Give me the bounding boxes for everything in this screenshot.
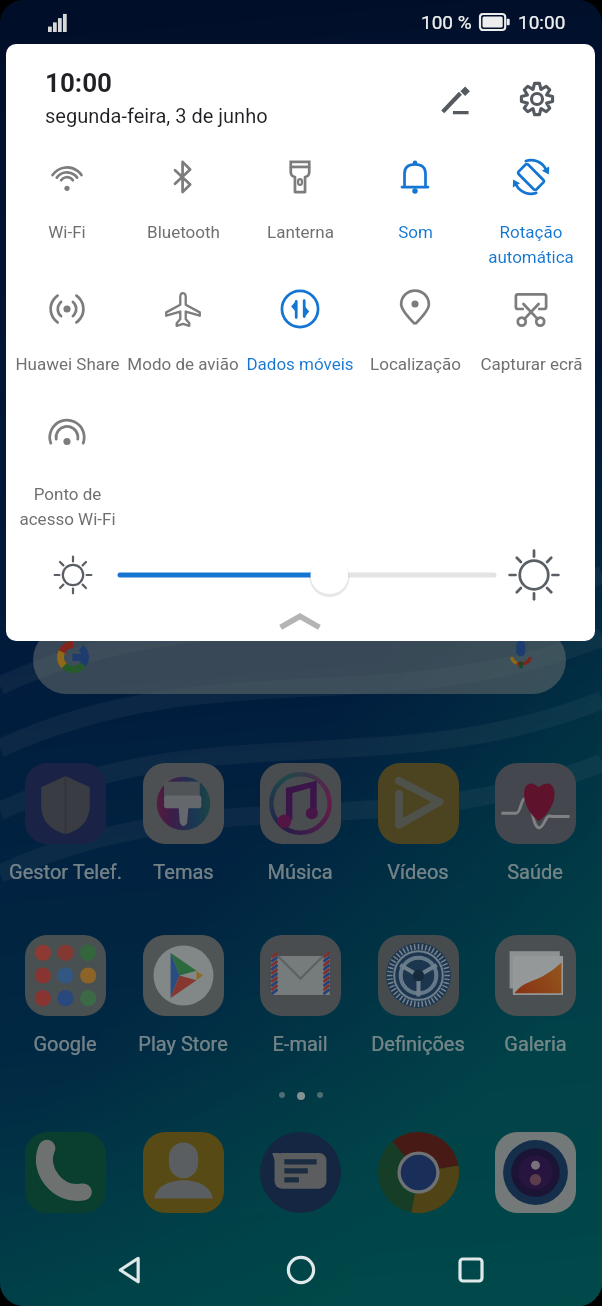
button[interactable]: Vídeos [378,763,459,844]
button[interactable]: Modo de avião [117,280,249,392]
button[interactable]: Mensagens [260,1132,341,1213]
button[interactable]: Recents [433,1234,509,1306]
staticText: Wi-Fi [48,222,86,242]
staticText: Google [33,1032,97,1055]
button[interactable]: E-mail [260,935,341,1016]
button[interactable]: Brilho [114,546,504,604]
staticText: E-mail [272,1032,328,1055]
button[interactable]: Definições [507,69,567,129]
button[interactable]: Editar [429,72,485,128]
button[interactable]: Bluetooth [117,148,249,260]
staticText: Ponto de acesso Wi-Fi [19,484,116,529]
button[interactable]: Localização [349,280,481,392]
staticText: Modo de avião [127,354,239,374]
button[interactable]: Saúde [495,763,576,844]
staticText: Temas [153,860,214,883]
staticText: Gestor Telef. [9,860,122,883]
staticText: Dados móveis [246,354,354,374]
button[interactable]: Gestor Telef. [25,763,106,844]
button[interactable]: Rotação automática [465,148,595,260]
staticText: Vídeos [387,860,449,883]
staticText: Bluetooth [147,222,220,242]
button[interactable]: Temas [143,763,224,844]
staticText: Lanterna [267,222,334,242]
staticText: Música [267,860,333,883]
staticText: Rotação automática [488,222,574,267]
button[interactable]: Ponto de acesso Wi-Fi [6,410,133,522]
staticText: Som [398,222,433,242]
button[interactable]: Huawei Share [6,280,133,392]
button[interactable]: Back [94,1234,170,1306]
staticText: Galeria [504,1032,567,1055]
button[interactable]: Wi-Fi [6,148,133,260]
staticText: Definições [371,1032,465,1055]
button[interactable]: Telefone [25,1132,106,1213]
button[interactable]: Capturar ecrã [465,280,595,392]
staticText: 100 % [421,11,472,33]
button[interactable]: Lanterna [234,148,366,260]
button[interactable]: Play Store [143,935,224,1016]
button[interactable]: Galeria [495,935,576,1016]
button[interactable]: Pesquisar [33,626,566,694]
button[interactable]: Dados móveis [234,280,366,392]
button[interactable]: Aumentar brilho [503,544,565,606]
staticText: Localização [370,354,461,374]
button[interactable]: Contactos [143,1132,224,1213]
button[interactable]: Música [260,763,341,844]
button[interactable]: Home [263,1234,339,1306]
staticText: segunda-feira, 3 de junho [45,104,268,127]
staticText: 10:00 [518,11,566,33]
button[interactable]: Diminuir brilho [44,546,102,604]
button[interactable]: Definições [378,935,459,1016]
staticText: Huawei Share [15,354,120,374]
staticText: Play Store [138,1032,228,1055]
button[interactable]: Câmara [495,1132,576,1213]
staticText: 10:00 [45,68,112,98]
button[interactable]: Recolher [270,604,330,640]
button[interactable]: Google [25,935,106,1016]
button[interactable]: Som [349,148,481,260]
staticText: Capturar ecrã [480,354,583,374]
button[interactable]: Chrome [378,1132,459,1213]
staticText: Saúde [507,860,563,883]
